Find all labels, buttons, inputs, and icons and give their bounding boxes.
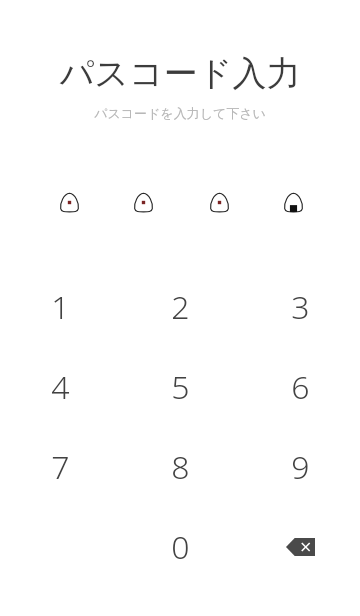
staticText: 7 bbox=[51, 445, 70, 489]
button[interactable]: 3 bbox=[240, 267, 360, 347]
staticText: 6 bbox=[291, 365, 310, 409]
staticText: パスコードを入力して下さい bbox=[0, 105, 360, 121]
button[interactable]: 9 bbox=[240, 427, 360, 507]
staticText: 3 bbox=[291, 285, 310, 329]
button[interactable]: 0 bbox=[120, 507, 240, 587]
button[interactable]: 1 bbox=[0, 267, 120, 347]
button[interactable]: 7 bbox=[0, 427, 120, 507]
button[interactable]: 2 bbox=[120, 267, 240, 347]
button[interactable]: 8 bbox=[120, 427, 240, 507]
staticText: 5 bbox=[171, 365, 190, 409]
staticText: 4 bbox=[51, 365, 70, 409]
staticText: 2 bbox=[171, 285, 190, 329]
staticText: 1 bbox=[51, 285, 70, 329]
button[interactable]: 4 bbox=[0, 347, 120, 427]
staticText: パスコード入力 bbox=[0, 52, 360, 95]
button[interactable]: 5 bbox=[120, 347, 240, 427]
button[interactable]: Backspace bbox=[240, 507, 360, 587]
staticText: 0 bbox=[171, 525, 190, 569]
button[interactable]: 6 bbox=[240, 347, 360, 427]
staticText: 9 bbox=[291, 445, 310, 489]
staticText: 8 bbox=[171, 445, 190, 489]
